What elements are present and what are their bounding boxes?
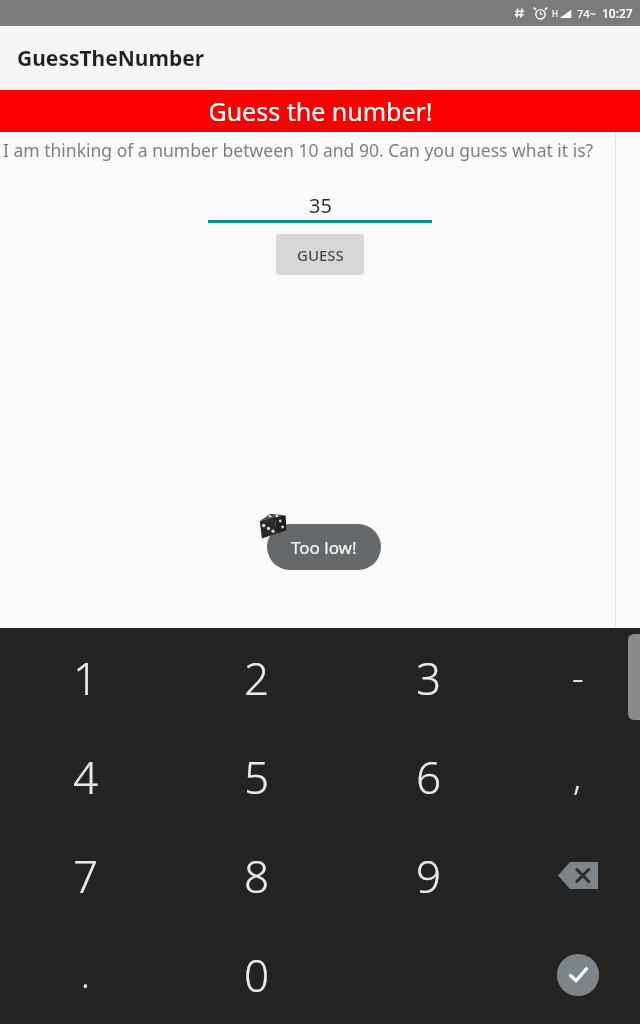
staticText: 2 [244, 648, 270, 708]
staticText: Guess the number! [208, 94, 433, 128]
staticText: Too low! [291, 536, 357, 559]
staticText: 6 [416, 747, 442, 807]
staticText: 4 [73, 747, 99, 807]
staticText: 8 [244, 846, 270, 906]
button[interactable]: - [515, 628, 640, 727]
button[interactable]: 8 [171, 826, 343, 925]
staticText: 3 [416, 648, 442, 708]
staticText: 10:27 [602, 5, 633, 21]
staticText: 9 [416, 846, 442, 906]
button[interactable]: 6 [343, 727, 515, 826]
button[interactable]: . [0, 925, 171, 1024]
button[interactable]: , [515, 727, 640, 826]
staticText: . [81, 950, 90, 999]
button[interactable]: 5 [171, 727, 343, 826]
staticText: 35 [309, 192, 332, 218]
staticText: 74~ [577, 6, 596, 21]
button[interactable]: Enter [515, 925, 640, 1024]
staticText: - [572, 653, 584, 702]
staticText: GuessTheNumber [17, 44, 205, 73]
staticText: H [552, 8, 558, 19]
button[interactable]: 0 [171, 925, 343, 1024]
staticText: I am thinking of a number between 10 and… [3, 138, 638, 162]
staticText: , [573, 752, 582, 801]
staticText: 7 [73, 846, 99, 906]
button[interactable]: 1 [0, 628, 171, 727]
button[interactable]: 2 [171, 628, 343, 727]
button[interactable]: Backspace [515, 826, 640, 925]
button[interactable]: 9 [343, 826, 515, 925]
button[interactable]: 7 [0, 826, 171, 925]
staticText: GUESS [297, 245, 344, 265]
staticText: 5 [244, 747, 270, 807]
button[interactable]: 3 [343, 628, 515, 727]
button[interactable]: GUESS [276, 234, 364, 275]
button[interactable]: 4 [0, 727, 171, 826]
staticText: 1 [73, 648, 99, 708]
staticText: 0 [244, 945, 270, 1005]
